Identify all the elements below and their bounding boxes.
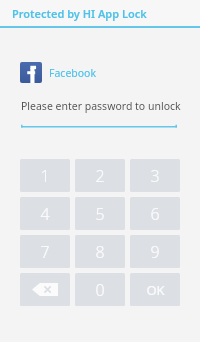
button[interactable]: 4	[20, 197, 70, 230]
button[interactable]: 3	[130, 159, 180, 192]
staticText: 3	[150, 165, 160, 187]
staticText: 5	[95, 203, 105, 225]
staticText: 0	[95, 279, 105, 301]
button[interactable]: OK	[130, 273, 180, 306]
staticText: 6	[150, 203, 160, 225]
staticText: 9	[150, 241, 160, 263]
staticText: OK	[146, 281, 165, 299]
staticText: Protected by HI App Lock	[12, 6, 147, 21]
button[interactable]: Backspace	[20, 273, 70, 306]
button[interactable]: 7	[20, 235, 70, 268]
staticText: Facebook	[49, 66, 97, 80]
staticText: 8	[95, 241, 105, 263]
button[interactable]: 0	[75, 273, 125, 306]
staticText: Please enter password to unlock	[21, 99, 181, 113]
staticText: 1	[40, 165, 50, 187]
button[interactable]: 8	[75, 235, 125, 268]
button[interactable]: 2	[75, 159, 125, 192]
button[interactable]: 6	[130, 197, 180, 230]
button[interactable]: 9	[130, 235, 180, 268]
staticText: 7	[40, 241, 50, 263]
staticText: 2	[95, 165, 105, 187]
button[interactable]: 5	[75, 197, 125, 230]
staticText: 4	[40, 203, 50, 225]
